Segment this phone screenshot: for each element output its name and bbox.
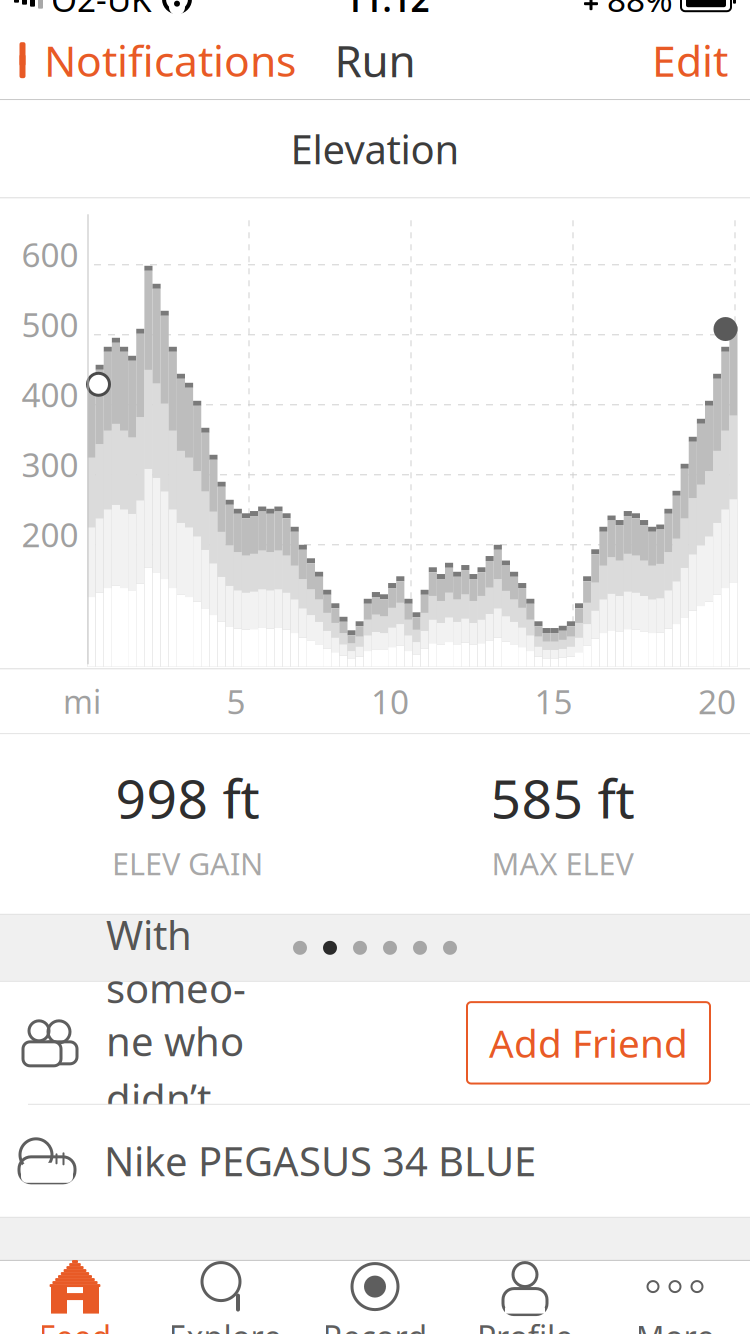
- staticText: With someone who: [106, 908, 246, 1067]
- button[interactable]: Feed: [0, 1259, 150, 1334]
- staticText: 10: [371, 679, 409, 723]
- staticText: Explore: [168, 1316, 281, 1334]
- staticText: Profile: [477, 1316, 573, 1334]
- button[interactable]: Explore: [150, 1259, 300, 1334]
- staticText: didn’t record?: [106, 1071, 246, 1178]
- button[interactable]: Notifications: [0, 28, 310, 92]
- staticText: O2-UK: [51, 0, 152, 21]
- button[interactable]: More: [600, 1259, 750, 1334]
- staticText: 5: [226, 679, 245, 723]
- staticText: Nike PEGASUS 34 BLUE: [104, 1134, 536, 1187]
- staticText: Feed: [38, 1316, 111, 1334]
- staticText: 300: [21, 442, 78, 486]
- staticText: MAX ELEV: [491, 843, 633, 884]
- staticText: More: [635, 1316, 714, 1334]
- staticText: 998 ft: [115, 762, 259, 833]
- staticText: 20: [698, 679, 736, 723]
- staticText: 11:12: [344, 0, 429, 21]
- button[interactable]: Edit: [630, 28, 750, 92]
- staticText: 585 ft: [490, 762, 634, 833]
- staticText: Add Friend: [489, 1017, 688, 1068]
- button[interactable]: Profile: [450, 1259, 600, 1334]
- staticText: Edit: [652, 32, 728, 88]
- staticText: Run: [334, 31, 415, 89]
- staticText: Record: [322, 1316, 427, 1334]
- staticText: 600: [21, 232, 78, 276]
- staticText: 88%: [607, 0, 673, 21]
- staticText: 15: [534, 679, 572, 723]
- staticText: 200: [21, 512, 78, 556]
- staticText: ELEV GAIN: [112, 843, 263, 884]
- staticText: Notifications: [44, 32, 296, 88]
- button[interactable]: With someone who: [0, 982, 750, 1104]
- staticText: Elevation: [290, 122, 459, 175]
- button[interactable]: Record: [300, 1259, 450, 1334]
- button[interactable]: Nike PEGASUS 34 BLUE: [0, 1105, 750, 1217]
- staticText: 500: [21, 302, 78, 346]
- staticText: mi: [63, 680, 101, 722]
- staticText: 400: [21, 372, 78, 416]
